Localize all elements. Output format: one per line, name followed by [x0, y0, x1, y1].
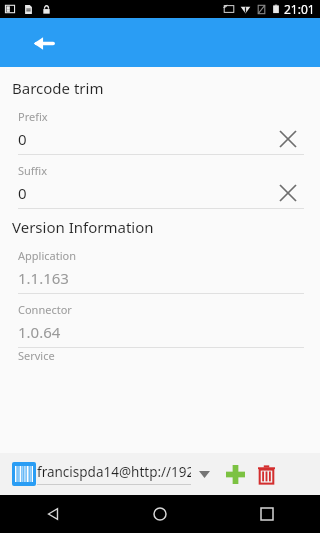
button[interactable]: Recents: [213, 495, 320, 533]
staticText: Prefix: [18, 109, 48, 124]
staticText: 0: [18, 129, 27, 149]
button[interactable]: Clear: [275, 126, 301, 152]
button[interactable]: francispda14@http://192.1(: [37, 463, 191, 485]
button[interactable]: Select profile: [191, 461, 217, 487]
staticText: 0: [18, 183, 27, 203]
staticText: Application: [18, 248, 76, 263]
button[interactable]: Home: [106, 495, 213, 533]
button[interactable]: Prefix: [0, 101, 320, 155]
button[interactable]: Barcode: [12, 462, 36, 486]
staticText: Version Information: [12, 217, 154, 237]
staticText: 1.1.163: [18, 268, 69, 288]
button[interactable]: Application: [0, 240, 320, 294]
staticText: Connector: [18, 302, 72, 317]
button[interactable]: Back: [0, 495, 106, 533]
button[interactable]: Delete: [252, 460, 280, 488]
staticText: francispda14@http://192.1(: [37, 463, 191, 481]
staticText: 1.0.64: [18, 322, 61, 342]
button[interactable]: Suffix: [0, 155, 320, 209]
button[interactable]: Clear: [275, 180, 301, 206]
staticText: Barcode trim: [12, 78, 104, 98]
staticText: 21:01: [284, 1, 315, 17]
staticText: Suffix: [18, 163, 48, 178]
button[interactable]: Connector: [0, 294, 320, 348]
staticText: Service: [18, 348, 55, 362]
button[interactable]: Back: [26, 26, 60, 60]
button[interactable]: Add: [221, 460, 249, 488]
